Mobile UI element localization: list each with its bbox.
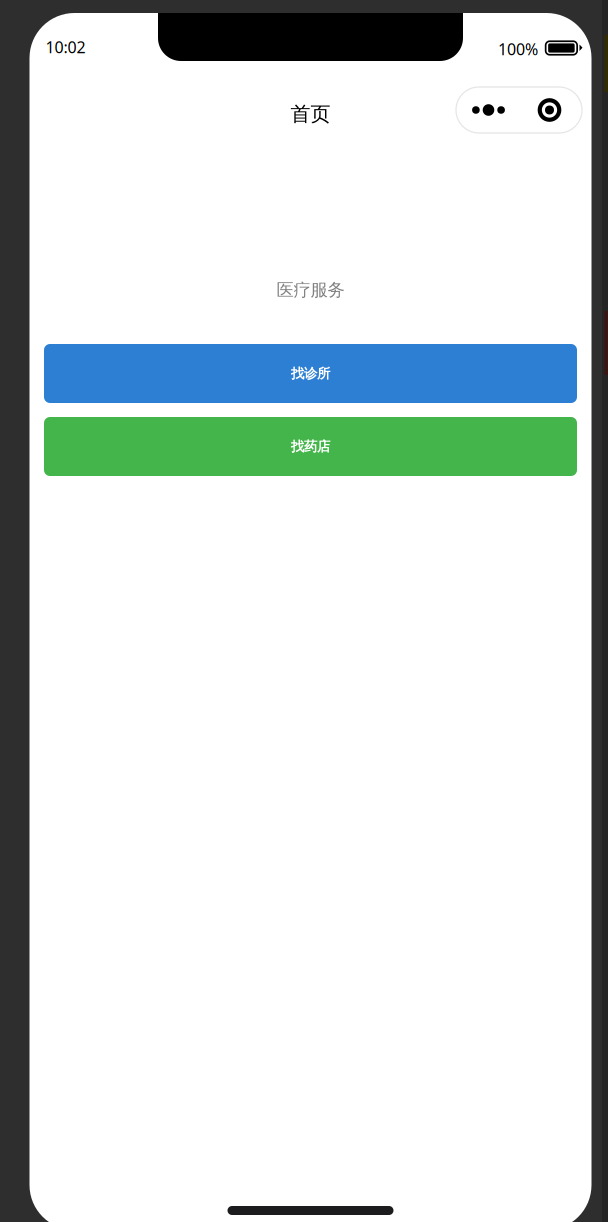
staticText: 100%	[498, 38, 538, 60]
staticText: 10:02	[45, 36, 85, 58]
button[interactable]: 找诊所	[44, 344, 577, 403]
staticText: 医疗服务	[276, 279, 344, 301]
staticText: 首页	[290, 102, 330, 126]
button[interactable]: Mini program menu	[456, 87, 582, 133]
staticText: 找药店	[291, 438, 330, 455]
staticText: 找诊所	[291, 365, 330, 382]
button[interactable]: 找药店	[44, 417, 577, 476]
